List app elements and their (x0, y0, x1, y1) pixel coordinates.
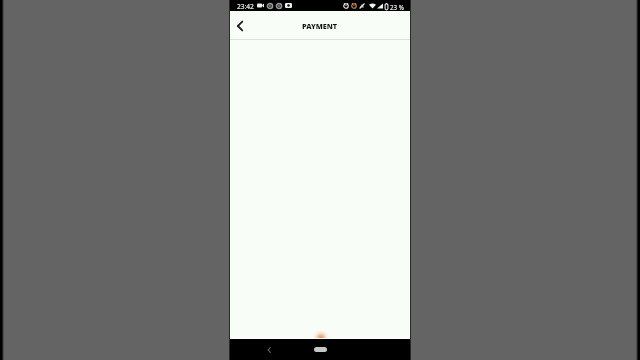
button[interactable]: Back (229, 12, 251, 40)
staticText: 23:42 (237, 2, 254, 11)
button[interactable]: Home (314, 347, 327, 352)
button[interactable]: Back (264, 345, 274, 355)
staticText: PAYMENT (302, 21, 338, 31)
staticText: 23 % (390, 3, 404, 11)
